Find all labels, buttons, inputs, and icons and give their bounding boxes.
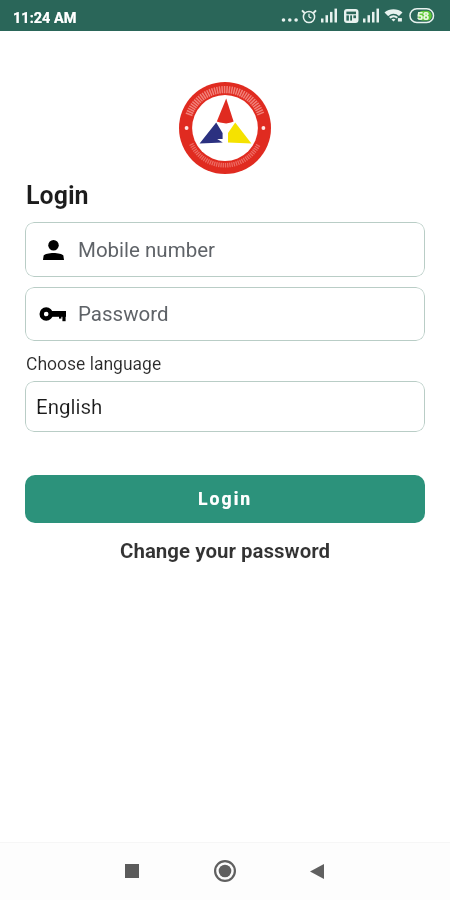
button[interactable]: Home [202,848,248,894]
button[interactable]: Change your password [112,536,339,566]
staticText: 11:24 AM [13,10,77,27]
button[interactable]: Password [25,287,425,341]
staticText: Choose language [26,354,162,375]
button[interactable]: Login [25,475,425,523]
button[interactable]: English [25,381,425,432]
staticText: English [36,395,103,419]
staticText: Login [198,489,253,510]
button[interactable]: Mobile number [25,222,425,277]
staticText: Mobile number [78,238,215,262]
staticText: 58 [417,10,430,22]
button[interactable]: Back [295,848,341,894]
button[interactable]: Recent apps [109,848,155,894]
staticText: Login [26,181,89,210]
staticText: Password [78,302,169,326]
